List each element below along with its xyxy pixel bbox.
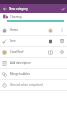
staticText: Iron [10,39,16,43]
button[interactable]: Back [0,4,9,13]
staticText: New category [9,7,28,11]
staticText: Remind when completed [10,83,43,87]
button[interactable]: Remind when completed [0,80,67,90]
button[interactable]: More options [56,47,67,57]
staticText: Home [10,28,18,32]
button[interactable]: Merge bubbles [0,69,67,79]
staticText: Add description [10,61,31,65]
button[interactable]: Home [0,25,67,35]
button[interactable]: Done [59,4,67,13]
button[interactable]: Coral Reef [0,47,67,57]
button[interactable]: Add description [0,58,67,68]
staticText: Cleaning [10,15,22,19]
button[interactable]: Iron [0,36,67,46]
button[interactable]: Attribute [44,25,56,35]
button[interactable]: Attribute [44,36,56,46]
staticText: Merge bubbles [10,72,30,76]
button[interactable]: Attribute [44,47,56,57]
staticText: Coral Reef [10,50,24,54]
button[interactable]: More options [56,36,67,46]
button[interactable]: More options [56,25,67,35]
